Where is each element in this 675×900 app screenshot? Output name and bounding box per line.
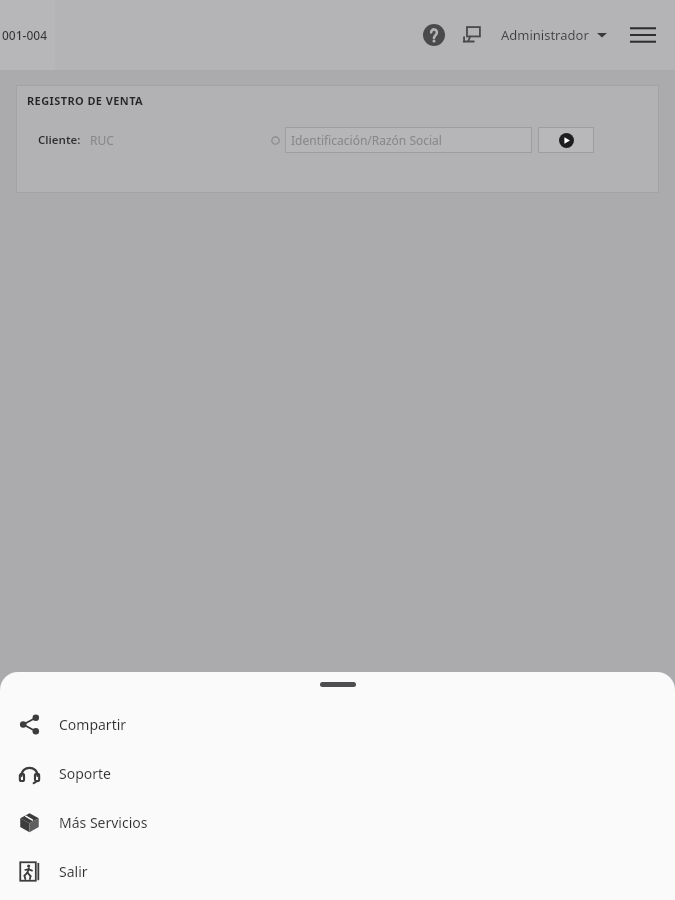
staticText: Más Servicios [59,813,675,832]
button[interactable]: Más Servicios [0,798,675,847]
staticText: Identificación/Razón Social [291,132,442,148]
staticText: REGISTRO DE VENTA [27,93,144,108]
button[interactable]: Soporte [0,749,675,798]
button[interactable]: Identificación/Razón Social [285,127,532,153]
button[interactable]: RUC [90,126,285,154]
button[interactable]: Buscar cliente [538,127,594,153]
button[interactable]: Ayuda [417,18,451,52]
staticText: Cliente: [38,132,81,148]
button[interactable]: Comentarios [455,18,489,52]
staticText: 001-004 [2,27,48,43]
staticText: RUC [90,132,271,148]
staticText: Administrador [501,26,589,44]
button[interactable]: Salir [0,847,675,896]
button[interactable]: Administrador [497,20,611,50]
staticText: Compartir [59,715,675,734]
staticText: Salir [59,862,675,881]
staticText: Soporte [59,764,675,783]
button[interactable]: Menú [625,17,661,53]
button[interactable]: Compartir [0,700,675,749]
